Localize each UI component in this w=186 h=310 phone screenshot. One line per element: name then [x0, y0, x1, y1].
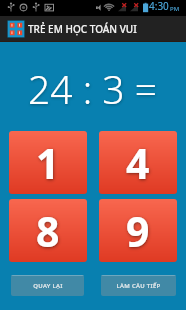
button[interactable]: QUAY LẠI — [11, 275, 84, 296]
staticText: TRẺ EM HỌC TOÁN VUI — [28, 22, 137, 36]
staticText: 24 : 3 = — [28, 62, 158, 115]
staticText: PM — [170, 5, 180, 13]
staticText: 9 — [126, 203, 150, 259]
staticText: 4:30 — [149, 0, 169, 13]
button[interactable]: 1 — [9, 131, 87, 194]
button[interactable]: LÀM CÂU TIẾP — [101, 275, 176, 296]
button[interactable]: 4 — [99, 131, 177, 194]
button[interactable]: 9 — [99, 199, 177, 262]
staticText: QUAY LẠI — [33, 282, 63, 290]
button[interactable]: 8 — [9, 199, 87, 262]
staticText: 1 — [36, 135, 60, 191]
staticText: 8 — [36, 203, 60, 259]
staticText: LÀM CÂU TIẾP — [116, 282, 161, 290]
staticText: 4 — [126, 135, 150, 191]
